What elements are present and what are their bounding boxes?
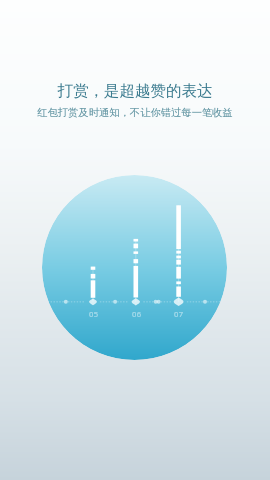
staticText: 05 xyxy=(89,309,99,319)
staticText: 06 xyxy=(132,309,142,319)
staticText: 打赏，是超越赞的表达 xyxy=(0,81,270,101)
staticText: 红包打赏及时通知，不让你错过每一笔收益 xyxy=(0,106,270,119)
staticText: 07 xyxy=(174,309,184,319)
button[interactable]: 打赏收益趋势图 xyxy=(42,175,227,360)
